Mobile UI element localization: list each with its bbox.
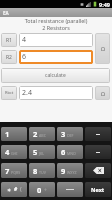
staticText: 0 bbox=[37, 185, 42, 195]
button[interactable]: Unit ohm bbox=[95, 33, 110, 64]
staticText: calculate bbox=[45, 72, 66, 79]
staticText: JKL bbox=[39, 151, 45, 156]
staticText: 7 bbox=[5, 166, 10, 176]
staticText: 4 bbox=[5, 147, 10, 157]
staticText: 2 bbox=[33, 129, 38, 139]
button[interactable]: Minus bbox=[85, 145, 111, 159]
button[interactable]: Minus bbox=[85, 127, 111, 141]
button[interactable]: App icon bbox=[2, 9, 10, 17]
button[interactable]: Rtot bbox=[1, 86, 17, 100]
button[interactable]: 2 bbox=[29, 127, 55, 141]
button[interactable]: calculate bbox=[1, 68, 110, 83]
staticText: 2 Resistors bbox=[0, 24, 112, 31]
staticText: Total resistance (parallel) bbox=[0, 17, 112, 24]
button[interactable]: Unit ohm bbox=[95, 86, 110, 100]
staticText: ( bbox=[20, 186, 22, 193]
button[interactable]: Symbols bbox=[1, 182, 27, 197]
staticText: ABC bbox=[39, 133, 46, 138]
button[interactable]: 6 bbox=[57, 145, 83, 159]
staticText: EA bbox=[3, 10, 9, 16]
staticText: PQRS bbox=[11, 170, 21, 175]
staticText: # bbox=[14, 186, 18, 193]
staticText: WXYZ bbox=[67, 170, 77, 175]
staticText: 2.4 bbox=[22, 88, 32, 98]
staticText: ✶ bbox=[7, 187, 12, 193]
staticText: 6 bbox=[22, 52, 27, 62]
button[interactable]: R2 bbox=[1, 50, 17, 64]
button[interactable]: 1 bbox=[1, 127, 27, 141]
button[interactable]: Next bbox=[85, 182, 111, 197]
staticText: 5 bbox=[33, 147, 38, 157]
button[interactable]: Backspace bbox=[85, 163, 111, 178]
staticText: Rtot bbox=[5, 90, 14, 96]
button[interactable]: 6 bbox=[19, 50, 93, 64]
staticText: R2 bbox=[6, 54, 12, 61]
button[interactable]: 4 bbox=[1, 145, 27, 159]
button[interactable]: R1 bbox=[1, 33, 17, 47]
staticText: 9 bbox=[61, 166, 66, 176]
button[interactable]: Zero bbox=[29, 182, 55, 197]
staticText: Ω bbox=[101, 90, 105, 97]
staticText: + bbox=[44, 187, 47, 194]
staticText: DEF bbox=[67, 133, 74, 138]
staticText: R1 bbox=[6, 37, 12, 44]
staticText: Ω bbox=[101, 45, 105, 52]
staticText: 1 bbox=[5, 129, 10, 139]
button[interactable]: 9 bbox=[57, 163, 83, 178]
staticText: 6 bbox=[61, 147, 66, 157]
staticText: GHI bbox=[11, 151, 18, 156]
button[interactable]: 4 bbox=[19, 33, 93, 47]
button[interactable]: 8 bbox=[29, 163, 55, 178]
button[interactable]: 7 bbox=[1, 163, 27, 178]
button[interactable]: 3 bbox=[57, 127, 83, 141]
staticText: 4 bbox=[22, 35, 27, 45]
staticText: Next bbox=[91, 186, 105, 193]
staticText: TUV bbox=[39, 170, 46, 175]
staticText: 3 bbox=[61, 129, 66, 139]
staticText: 8 bbox=[33, 166, 38, 176]
staticText: 9:49 bbox=[99, 1, 110, 8]
button[interactable]: 2.4 bbox=[19, 86, 93, 100]
button[interactable]: Space bbox=[57, 182, 83, 197]
button[interactable]: 5 bbox=[29, 145, 55, 159]
staticText: MNO bbox=[67, 151, 76, 156]
